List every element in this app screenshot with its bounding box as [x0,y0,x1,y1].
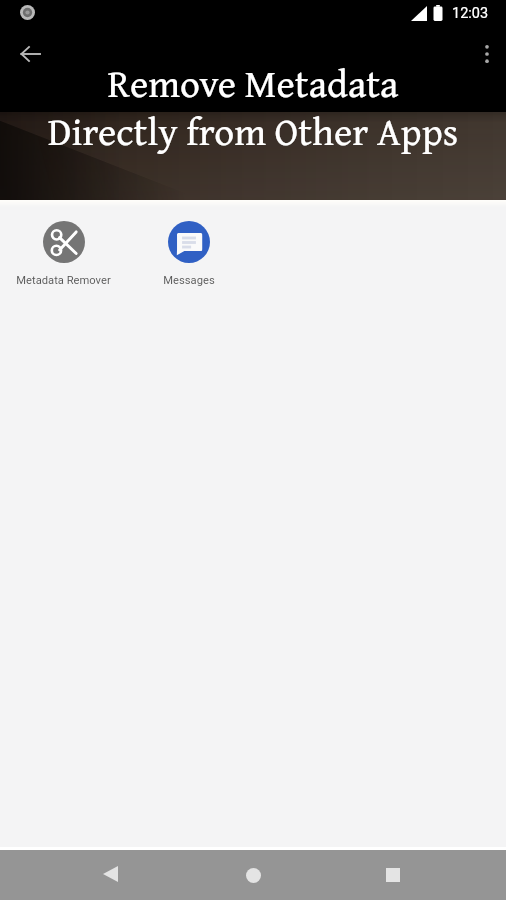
button[interactable]: Messages [126,221,252,287]
staticText: Metadata Remover [16,274,111,287]
button[interactable]: Recent apps [369,850,417,900]
button[interactable]: Metadata Remover [0,221,126,287]
staticText: 12:03 [452,5,489,22]
staticText: Remove Metadata Directly from Other Apps [0,61,506,157]
button[interactable]: More options [465,32,506,76]
button[interactable]: Back [8,32,52,76]
button[interactable]: Back [86,850,134,900]
staticText: Messages [163,274,215,287]
button[interactable]: Home [229,850,277,900]
